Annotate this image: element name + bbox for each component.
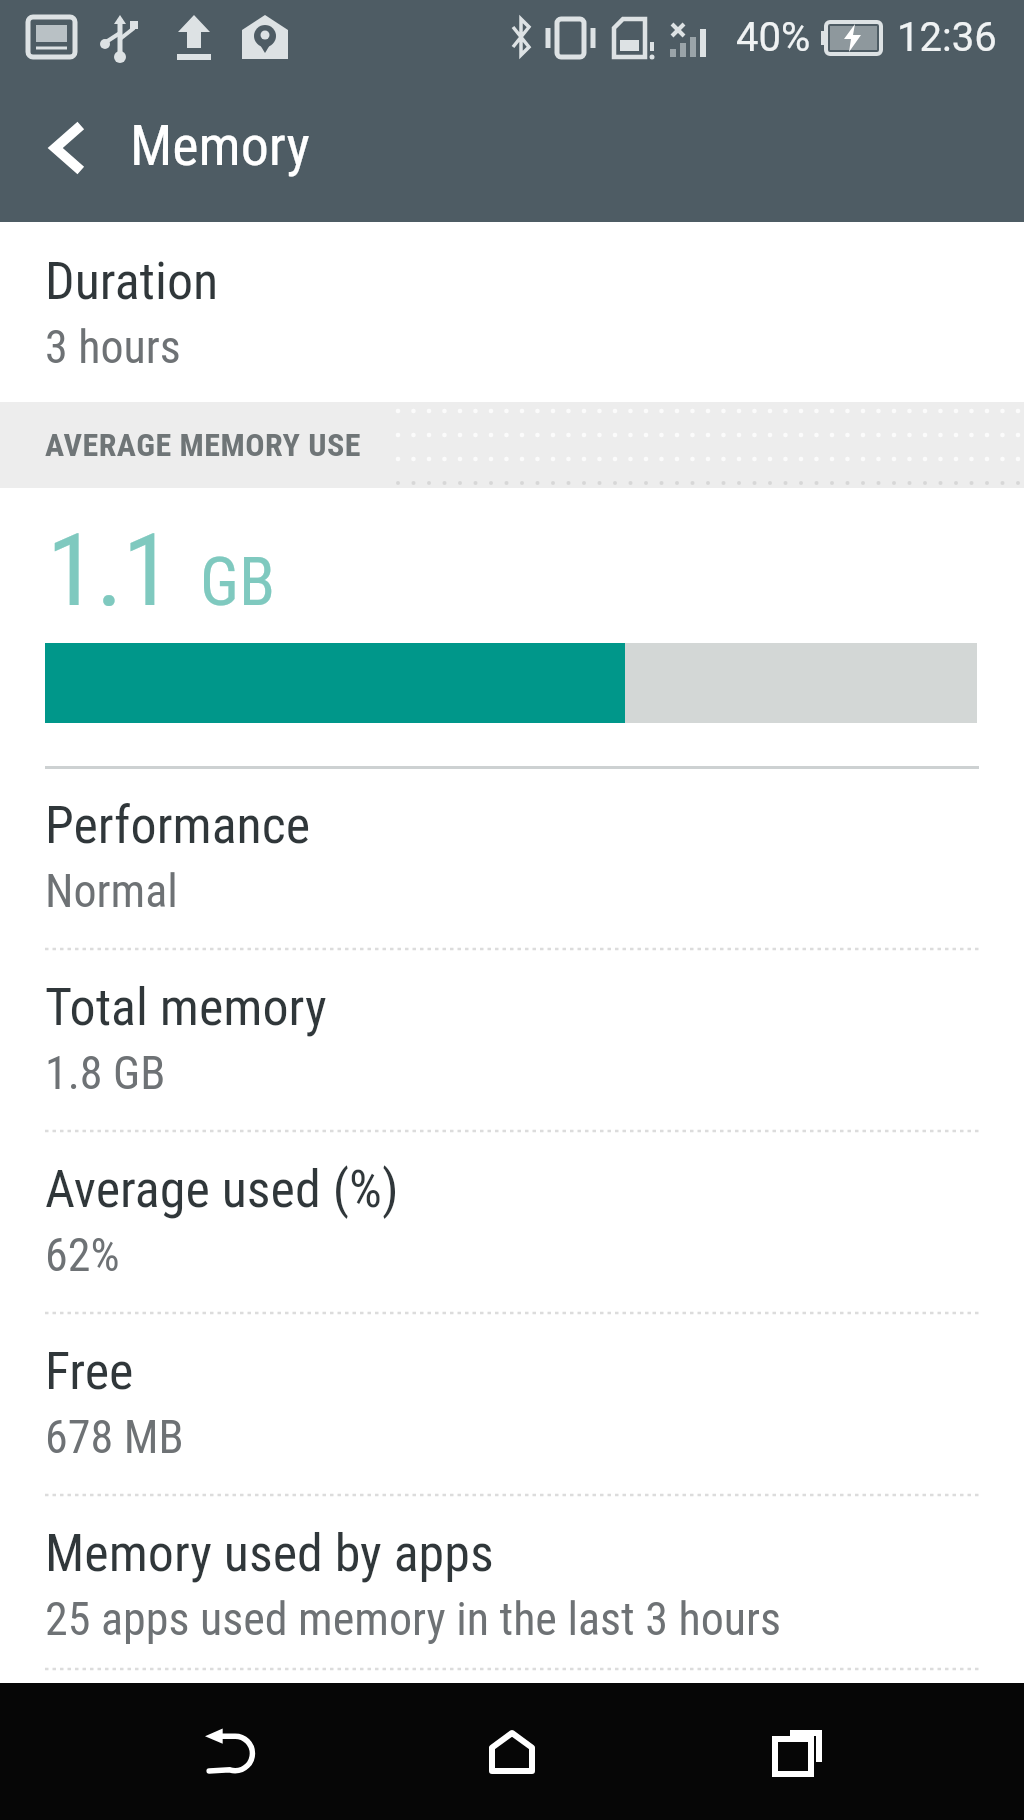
staticText: Memory used by apps: [45, 1523, 494, 1584]
button[interactable]: [171, 1683, 291, 1820]
staticText: Free: [45, 1341, 134, 1402]
button[interactable]: Free: [0, 1312, 1024, 1494]
button[interactable]: [452, 1683, 572, 1820]
staticText: Performance: [45, 795, 311, 856]
staticText: Average used (%): [45, 1159, 399, 1220]
staticText: Total memory: [45, 977, 327, 1038]
staticText: Normal: [45, 864, 178, 918]
staticText: 678 MB: [45, 1410, 184, 1464]
staticText: 1.8 GB: [45, 1046, 166, 1100]
staticText: AVERAGE MEMORY USE: [45, 426, 361, 464]
staticText: Duration: [45, 251, 219, 312]
staticText: 62%: [45, 1228, 120, 1282]
staticText: 1.1: [47, 512, 173, 629]
button[interactable]: [737, 1683, 857, 1820]
button[interactable]: [30, 108, 106, 188]
button[interactable]: Average used (%): [0, 1130, 1024, 1312]
staticText: 40%: [736, 14, 811, 61]
button[interactable]: Performance: [0, 766, 1024, 948]
staticText: Memory: [130, 113, 310, 179]
staticText: 25 apps used memory in the last 3 hours: [45, 1592, 781, 1646]
button[interactable]: Memory used by apps: [0, 1494, 1024, 1668]
button[interactable]: Total memory: [0, 948, 1024, 1130]
staticText: 12:36: [897, 14, 997, 61]
button[interactable]: Duration: [0, 222, 1024, 402]
staticText: GB: [200, 544, 276, 621]
staticText: 3 hours: [45, 320, 181, 374]
